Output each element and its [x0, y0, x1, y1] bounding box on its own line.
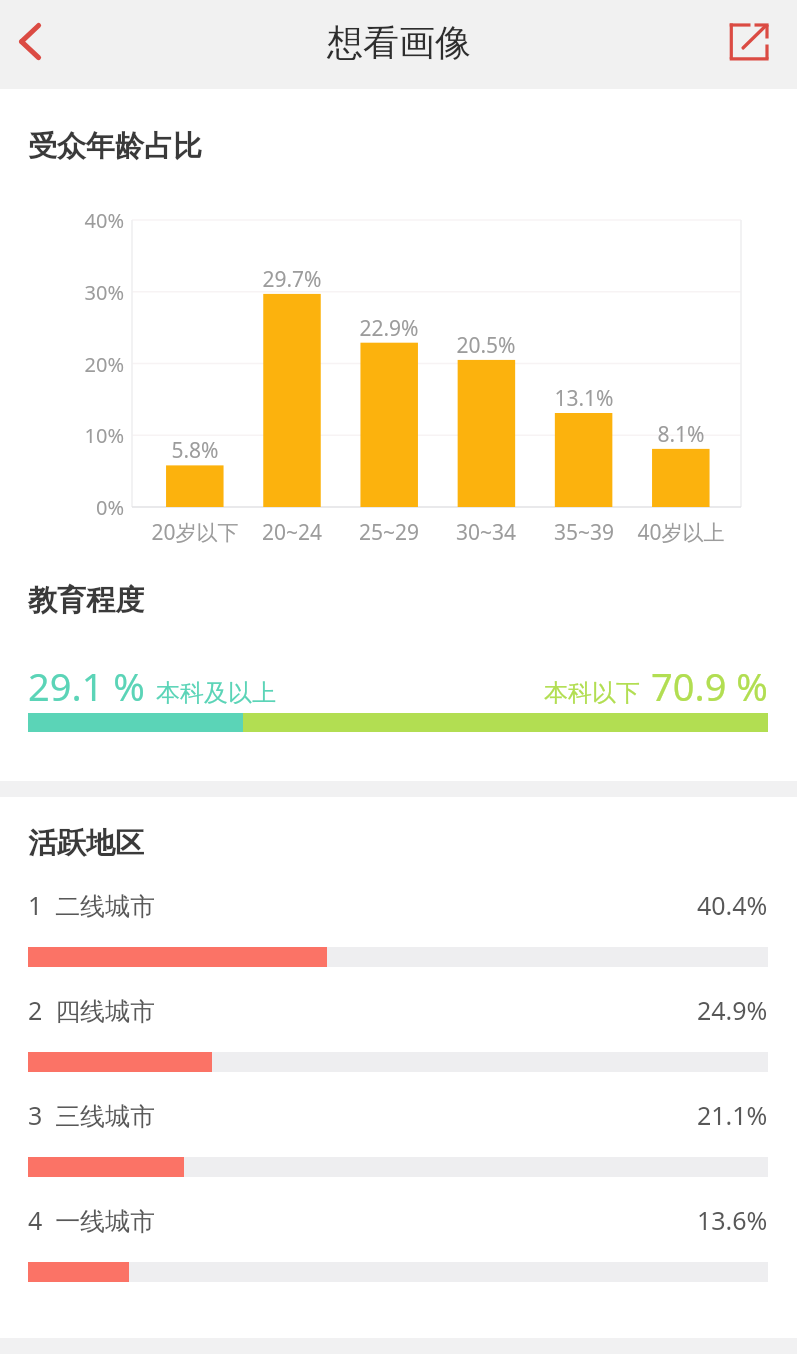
staticText: 0% [59, 494, 124, 521]
staticText: 40% [59, 207, 124, 234]
staticText: 25~29 [324, 518, 454, 547]
staticText: 24.9% [697, 993, 768, 1027]
button[interactable]: Back [0, 0, 60, 89]
staticText: 1 二线城市 [28, 888, 156, 922]
staticText: 70.9 % [651, 660, 768, 712]
staticText: 40.4% [697, 888, 768, 922]
staticText: 22.9% [329, 314, 449, 343]
staticText: 想看画像 [327, 20, 471, 65]
button[interactable]: Share [729, 0, 797, 89]
staticText: 5.8% [135, 436, 255, 465]
staticText: 30% [59, 279, 124, 306]
staticText: 本科以下 [544, 678, 640, 708]
staticText: 13.1% [524, 384, 644, 413]
staticText: 21.1% [697, 1098, 768, 1132]
staticText: 10% [59, 422, 124, 449]
staticText: 本科及以上 [156, 678, 276, 708]
staticText: 教育程度 [28, 582, 144, 619]
staticText: 20~24 [227, 518, 357, 547]
staticText: 20.5% [426, 331, 546, 360]
staticText: 受众年龄占比 [28, 128, 202, 165]
staticText: 20% [59, 351, 124, 378]
staticText: 13.6% [697, 1203, 768, 1237]
staticText: 20岁以下 [130, 518, 260, 547]
staticText: 29.7% [232, 265, 352, 294]
staticText: 8.1% [621, 420, 741, 449]
staticText: 3 三线城市 [28, 1098, 156, 1132]
staticText: 活跃地区 [28, 825, 144, 862]
button[interactable]: 4 一线城市 [0, 1198, 797, 1303]
staticText: 40岁以上 [616, 518, 746, 547]
staticText: 29.1 % [28, 660, 145, 712]
button[interactable]: 3 三线城市 [0, 1093, 797, 1198]
staticText: 35~39 [519, 518, 649, 547]
button[interactable]: 2 四线城市 [0, 988, 797, 1093]
button[interactable]: 1 二线城市 [0, 883, 797, 988]
staticText: 4 一线城市 [28, 1203, 156, 1237]
staticText: 2 四线城市 [28, 993, 156, 1027]
staticText: 30~34 [421, 518, 551, 547]
